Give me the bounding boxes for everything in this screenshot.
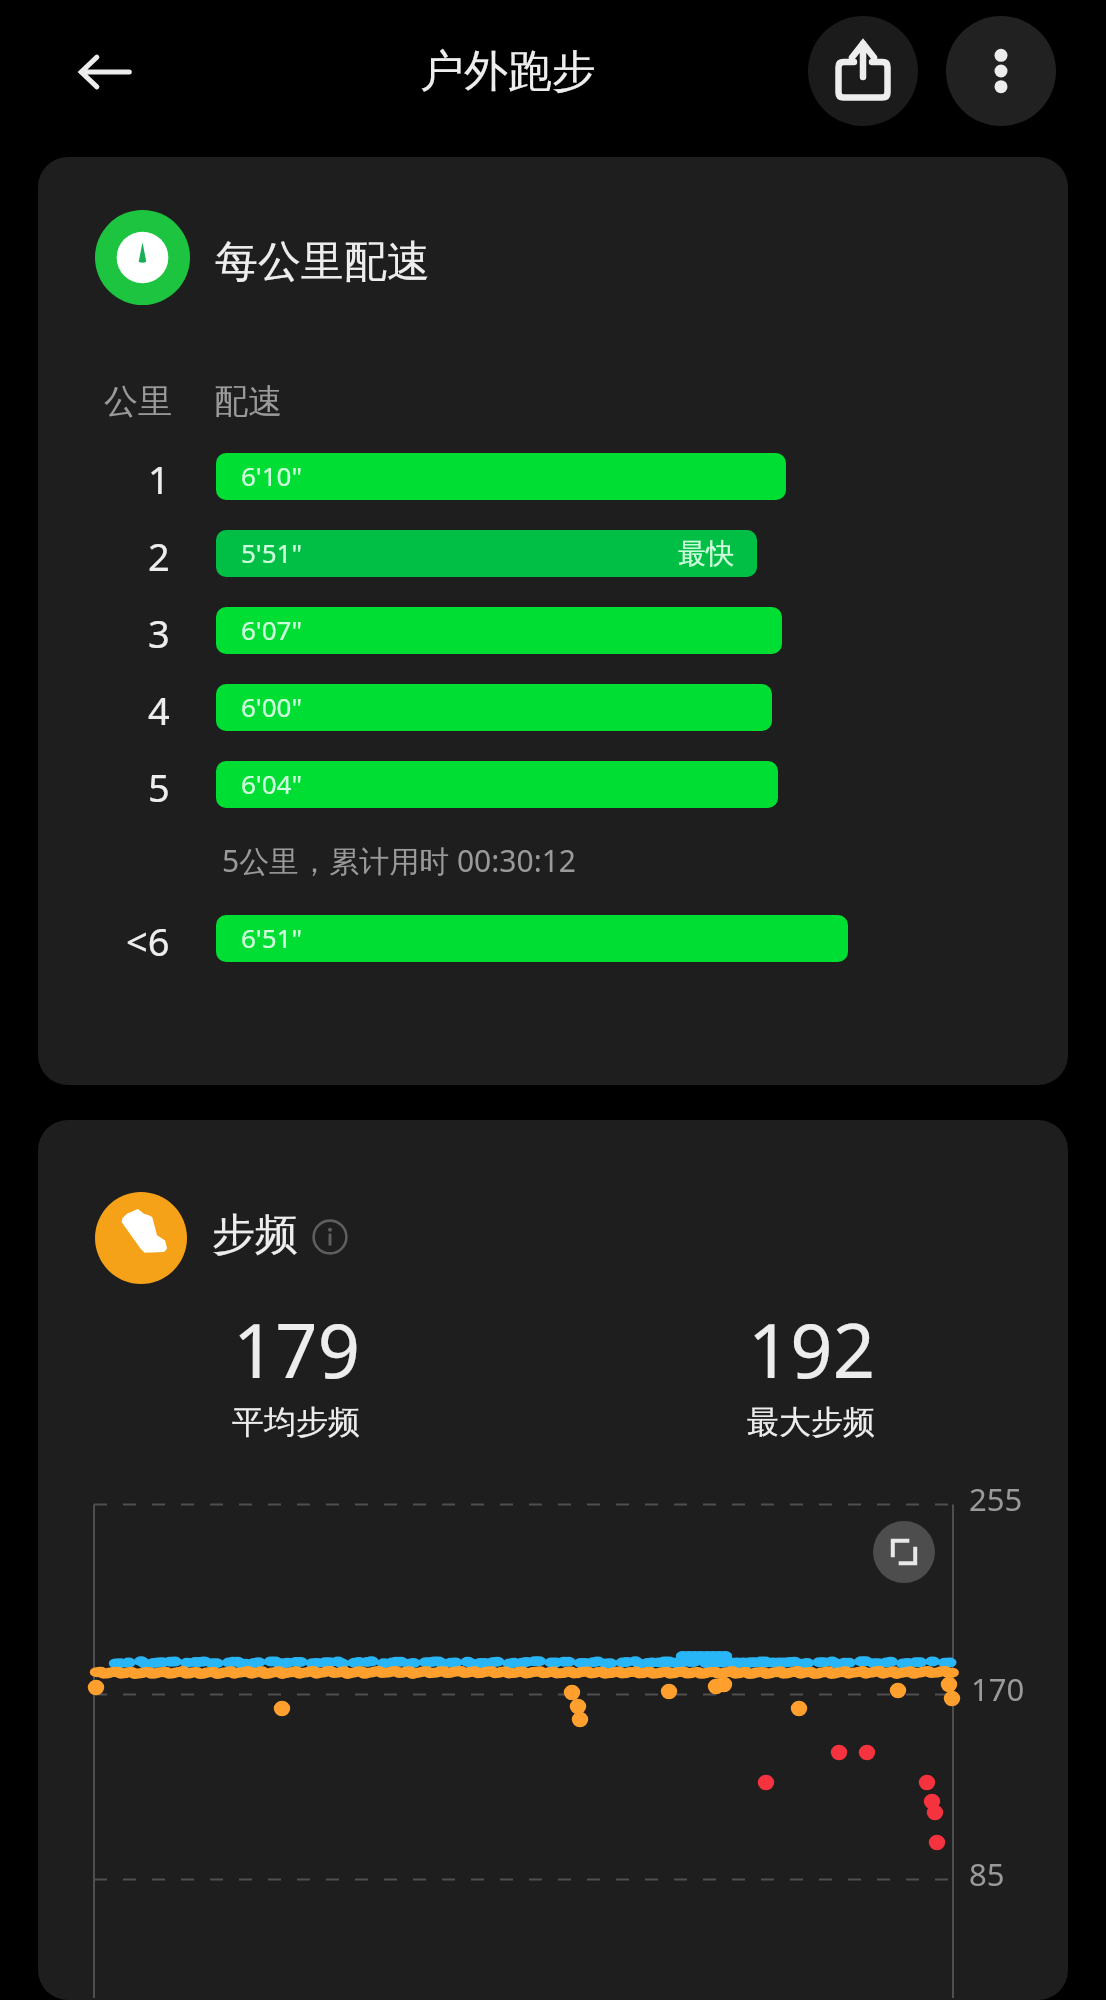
button[interactable]: Share xyxy=(808,16,918,126)
staticText: 5'51" xyxy=(241,535,303,570)
staticText: 公里 xyxy=(104,380,172,423)
staticText: 170 xyxy=(971,1668,1025,1710)
staticText: 最快 xyxy=(678,536,734,571)
button[interactable]: Back xyxy=(75,42,135,102)
staticText: 最大步频 xyxy=(747,1402,875,1442)
staticText: 179 xyxy=(233,1299,360,1400)
staticText: 192 xyxy=(748,1299,875,1400)
staticText: 6'51" xyxy=(241,920,303,955)
staticText: 255 xyxy=(969,1478,1023,1520)
staticText: <6 xyxy=(126,915,170,962)
button[interactable]: Expand chart xyxy=(873,1521,935,1583)
staticText: 配速 xyxy=(214,380,282,423)
button[interactable]: 步频 xyxy=(38,1120,1068,2000)
staticText: 6'07" xyxy=(241,612,303,647)
staticText: 步频 xyxy=(212,1208,298,1262)
staticText: 5公里，累计用时 00:30:12 xyxy=(222,840,576,881)
button[interactable]: More options xyxy=(946,16,1056,126)
staticText: 5 xyxy=(148,761,170,808)
staticText: 1 xyxy=(148,453,170,500)
staticText: 6'04" xyxy=(241,766,303,801)
staticText: 6'10" xyxy=(241,458,303,493)
staticText: 3 xyxy=(148,607,170,654)
staticText: 85 xyxy=(969,1853,1005,1895)
button[interactable]: 每公里配速 xyxy=(38,157,1068,1085)
staticText: 户外跑步 xyxy=(420,44,596,99)
staticText: 平均步频 xyxy=(232,1402,360,1442)
staticText: 4 xyxy=(148,684,170,731)
staticText: 每公里配速 xyxy=(215,235,430,289)
staticText: 6'00" xyxy=(241,689,303,724)
staticText: 2 xyxy=(148,530,170,577)
